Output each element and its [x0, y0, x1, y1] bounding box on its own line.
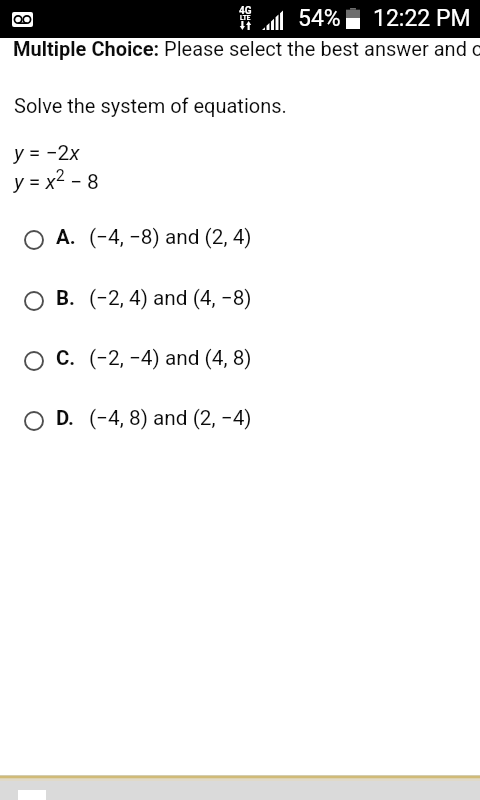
staticText: 12:22 PM: [373, 5, 471, 32]
staticText: C.: [56, 346, 76, 370]
staticText: 54%: [298, 5, 341, 32]
staticText: Multiple Choice: Please select the best …: [13, 37, 480, 60]
staticText: (−2, 4) and (4, −8): [89, 286, 252, 310]
staticText: D.: [56, 406, 75, 430]
button[interactable]: A.: [0, 213, 480, 267]
staticText: y = −2x: [14, 141, 80, 166]
staticText: (−4, −8) and (2, 4): [89, 225, 252, 249]
staticText: 4G: [239, 5, 252, 17]
staticText: A.: [56, 225, 76, 249]
staticText: B.: [56, 286, 75, 310]
other: 4G LTE data: [239, 7, 253, 30]
staticText: y = x2 − 8: [14, 166, 99, 195]
staticText: LTE: [240, 14, 251, 22]
staticText: (−4, 8) and (2, −4): [89, 406, 252, 430]
button[interactable]: B.: [0, 274, 480, 328]
button[interactable]: C.: [0, 334, 480, 388]
other: Signal strength: [262, 10, 283, 30]
other: Voicemail: [12, 12, 33, 27]
staticText: (−2, −4) and (4, 8): [89, 346, 252, 370]
staticText: Solve the system of equations.: [14, 94, 287, 117]
other: Battery 54 percent: [346, 8, 360, 29]
button[interactable]: D.: [0, 394, 480, 448]
